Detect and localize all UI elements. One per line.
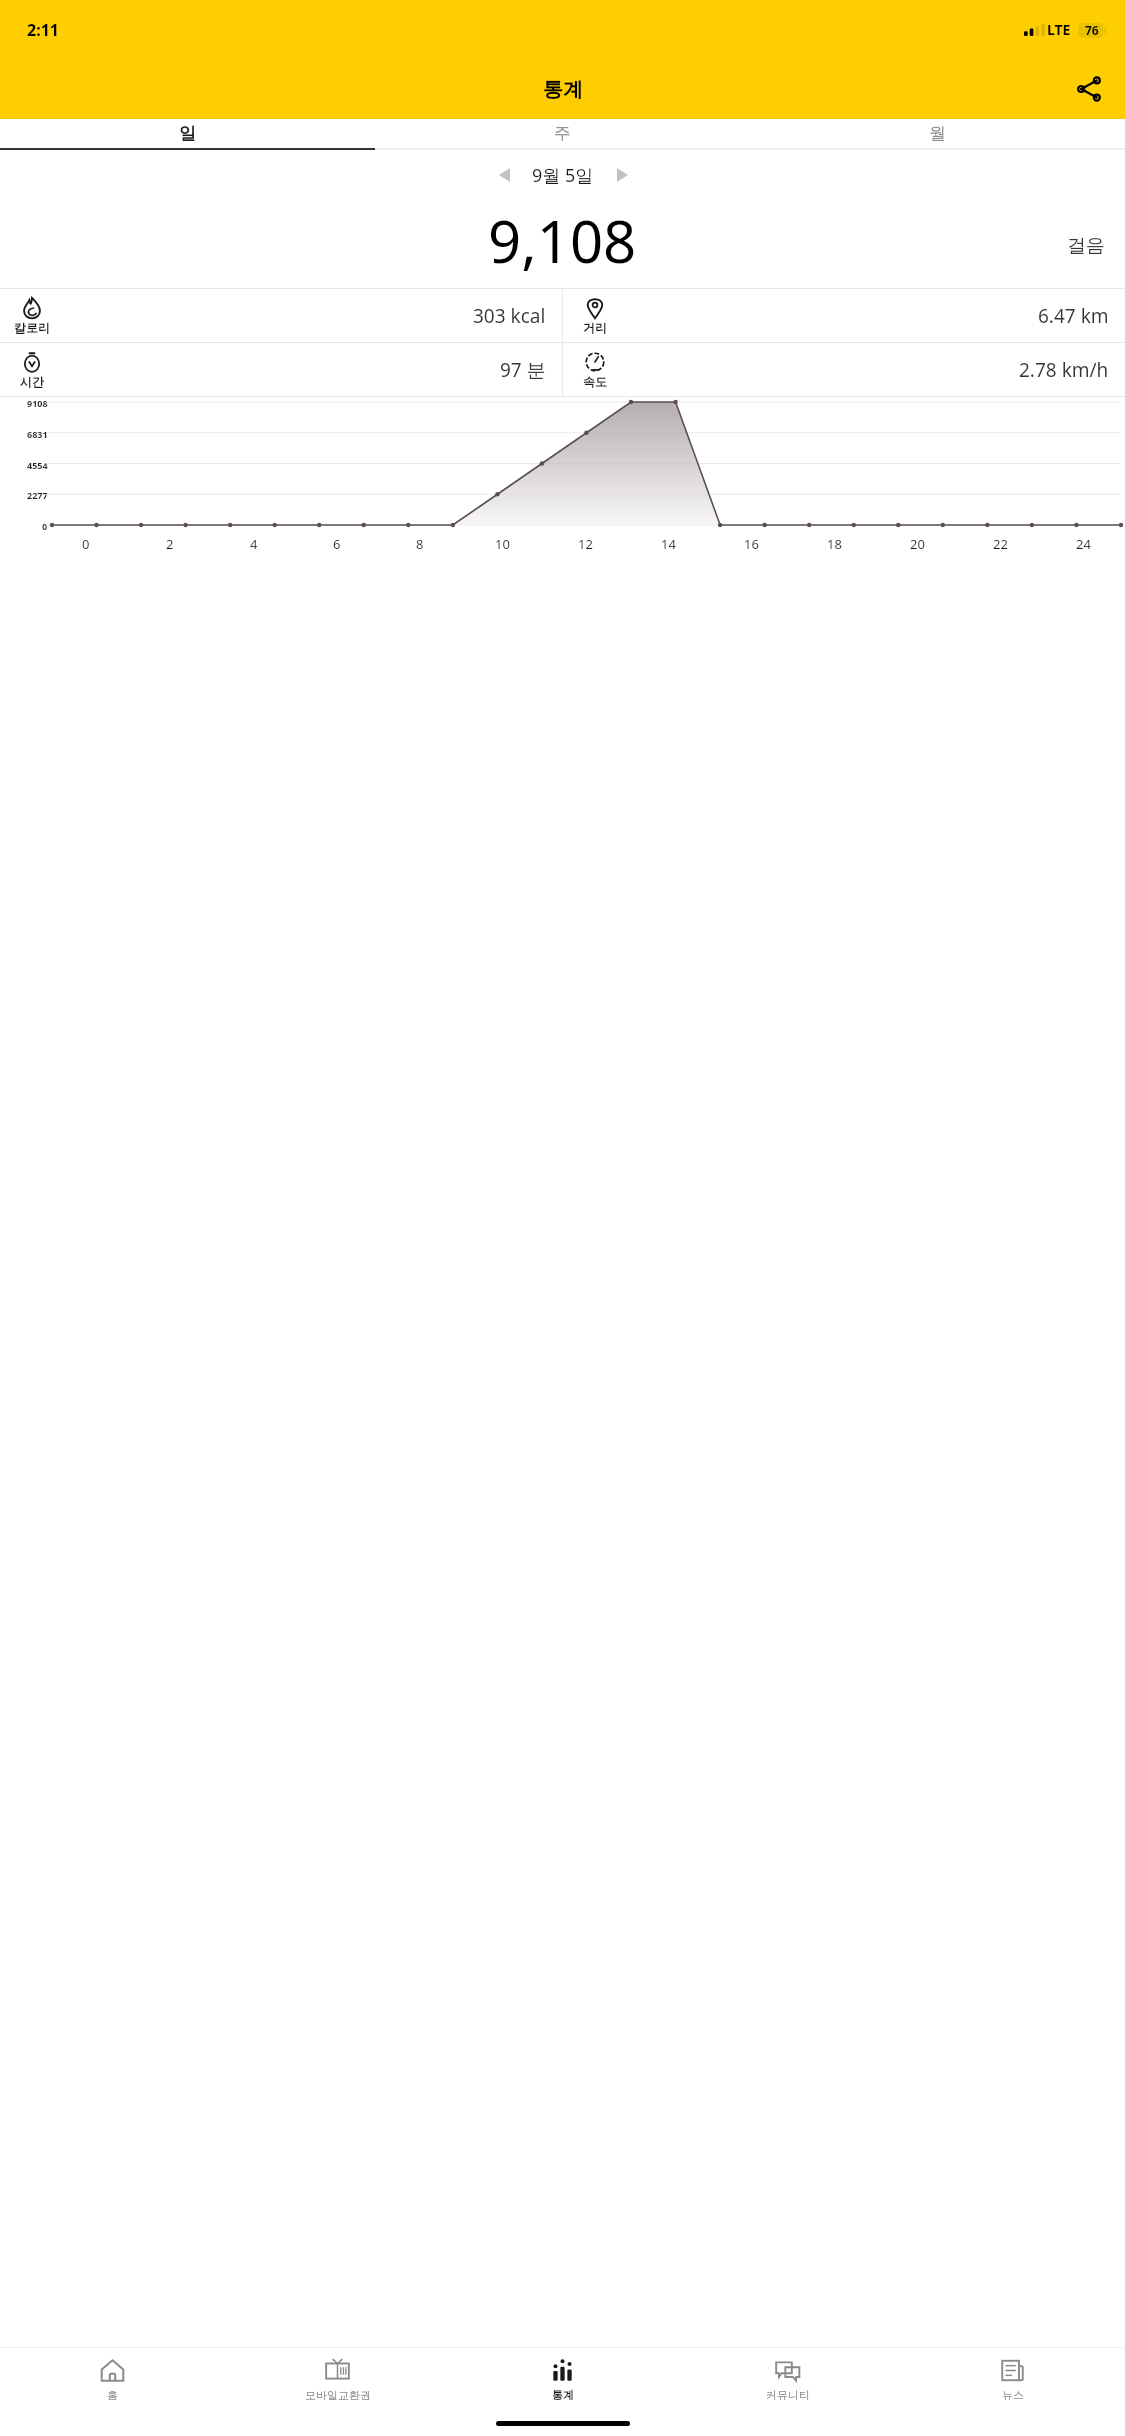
staticText: 거리	[583, 320, 607, 335]
staticText: 303 kcal	[473, 303, 546, 329]
button[interactable]: 커뮤니티	[675, 2348, 900, 2410]
staticText: 2:11	[27, 19, 59, 41]
staticText: 8	[416, 535, 424, 553]
staticText: 월	[929, 123, 946, 144]
staticText: 24	[1076, 535, 1091, 553]
staticText: 6	[333, 535, 341, 553]
button[interactable]: Previous day	[486, 157, 522, 193]
staticText: 2277	[27, 489, 48, 499]
staticText: LTE	[1047, 20, 1071, 39]
staticText: 주	[554, 123, 571, 144]
staticText: 2.78 km/h	[1019, 357, 1109, 383]
staticText: 통계	[543, 77, 583, 102]
staticText: 뉴스	[1002, 2388, 1024, 2402]
staticText: 시간	[20, 374, 44, 389]
staticText: 9108	[27, 397, 48, 407]
staticText: 4554	[27, 459, 48, 469]
staticText: 0	[82, 535, 90, 553]
staticText: 2	[166, 535, 174, 553]
button[interactable]: Share	[1065, 65, 1113, 113]
staticText: 6831	[27, 428, 48, 438]
staticText: 16	[744, 535, 759, 553]
button[interactable]: 통계	[450, 2348, 675, 2410]
button[interactable]: 시간	[0, 343, 562, 396]
button[interactable]: Next day	[604, 157, 640, 193]
button[interactable]: 일	[0, 119, 375, 148]
staticText: 홈	[107, 2388, 118, 2402]
staticText: 9월 5일	[532, 163, 594, 188]
staticText: 18	[827, 535, 842, 553]
button[interactable]: 모바일교환권	[225, 2348, 450, 2410]
staticText: 일	[179, 123, 196, 144]
button[interactable]: 홈	[0, 2348, 225, 2410]
staticText: 10	[495, 535, 510, 553]
staticText: 모바일교환권	[305, 2388, 371, 2402]
button[interactable]: 속도	[563, 343, 1125, 396]
staticText: 커뮤니티	[766, 2388, 810, 2402]
staticText: 속도	[583, 374, 607, 389]
staticText: 6.47 km	[1038, 303, 1109, 329]
staticText: 12	[578, 535, 593, 553]
staticText: 걸음	[1067, 234, 1105, 258]
button[interactable]: 뉴스	[900, 2348, 1125, 2410]
staticText: 9,108	[488, 201, 637, 280]
staticText: 0	[42, 520, 48, 530]
staticText: 76	[1085, 22, 1099, 38]
button[interactable]: 칼로리	[0, 289, 562, 342]
button[interactable]: 주	[375, 119, 750, 148]
staticText: 통계	[552, 2388, 574, 2402]
staticText: 97 분	[500, 357, 546, 383]
staticText: 14	[661, 535, 676, 553]
button[interactable]: 월	[750, 119, 1125, 148]
staticText: 4	[250, 535, 258, 553]
button[interactable]: 거리	[563, 289, 1125, 342]
staticText: 22	[993, 535, 1008, 553]
staticText: 20	[910, 535, 925, 553]
staticText: 칼로리	[14, 320, 50, 335]
